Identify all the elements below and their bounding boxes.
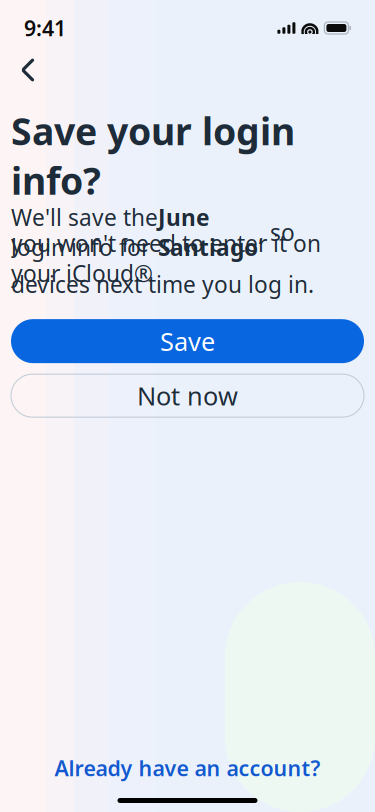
button[interactable]: Not now xyxy=(11,374,364,417)
staticText: you won't need to enter it on your iClou… xyxy=(11,228,321,288)
button[interactable]: Back xyxy=(6,48,50,92)
staticText: devices next time you log in. xyxy=(11,269,314,299)
staticText: We'll save the login info for xyxy=(11,202,158,262)
staticText: Not now xyxy=(137,379,238,412)
button[interactable]: Save xyxy=(11,319,364,363)
staticText: Save xyxy=(160,324,215,358)
staticText: June Santiago xyxy=(158,202,258,262)
staticText: , so xyxy=(258,217,295,247)
staticText: Already have an account? xyxy=(54,754,320,782)
button[interactable]: Already have an account? xyxy=(0,748,375,788)
staticText: Save your login info? xyxy=(11,106,295,205)
staticText: 9:41 xyxy=(24,14,66,42)
